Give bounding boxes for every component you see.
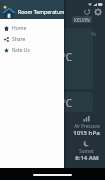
staticText: Air Pressure <box>74 123 100 129</box>
staticText: 1015 hPa <box>73 129 100 137</box>
staticText: 26°C <box>50 50 73 64</box>
button[interactable]: Share <box>0 34 64 45</box>
staticText: 22°C <box>50 96 73 110</box>
staticText: Room Temperature <box>18 8 64 15</box>
staticText: Rate Us <box>12 47 30 54</box>
staticText: 3:18 <box>2 1 11 7</box>
button[interactable]: Refresh <box>83 8 91 16</box>
button[interactable]: 26°C <box>5 28 93 89</box>
staticText: 6:14 AM <box>75 154 99 162</box>
button[interactable]: Sunset <box>68 140 105 162</box>
button[interactable]: 22°C <box>5 92 93 112</box>
button[interactable]: KELVIN <box>72 16 92 23</box>
staticText: Share <box>12 36 26 43</box>
staticText: Sunset <box>79 148 94 154</box>
staticText: KELVIN <box>74 17 90 23</box>
staticText: % <box>91 30 96 38</box>
button[interactable]: Settings <box>94 8 102 16</box>
staticText: Home <box>12 25 27 32</box>
button[interactable]: Rate Us <box>0 45 64 56</box>
button[interactable]: Air Pressure <box>68 115 105 137</box>
button[interactable]: Home <box>0 23 64 34</box>
